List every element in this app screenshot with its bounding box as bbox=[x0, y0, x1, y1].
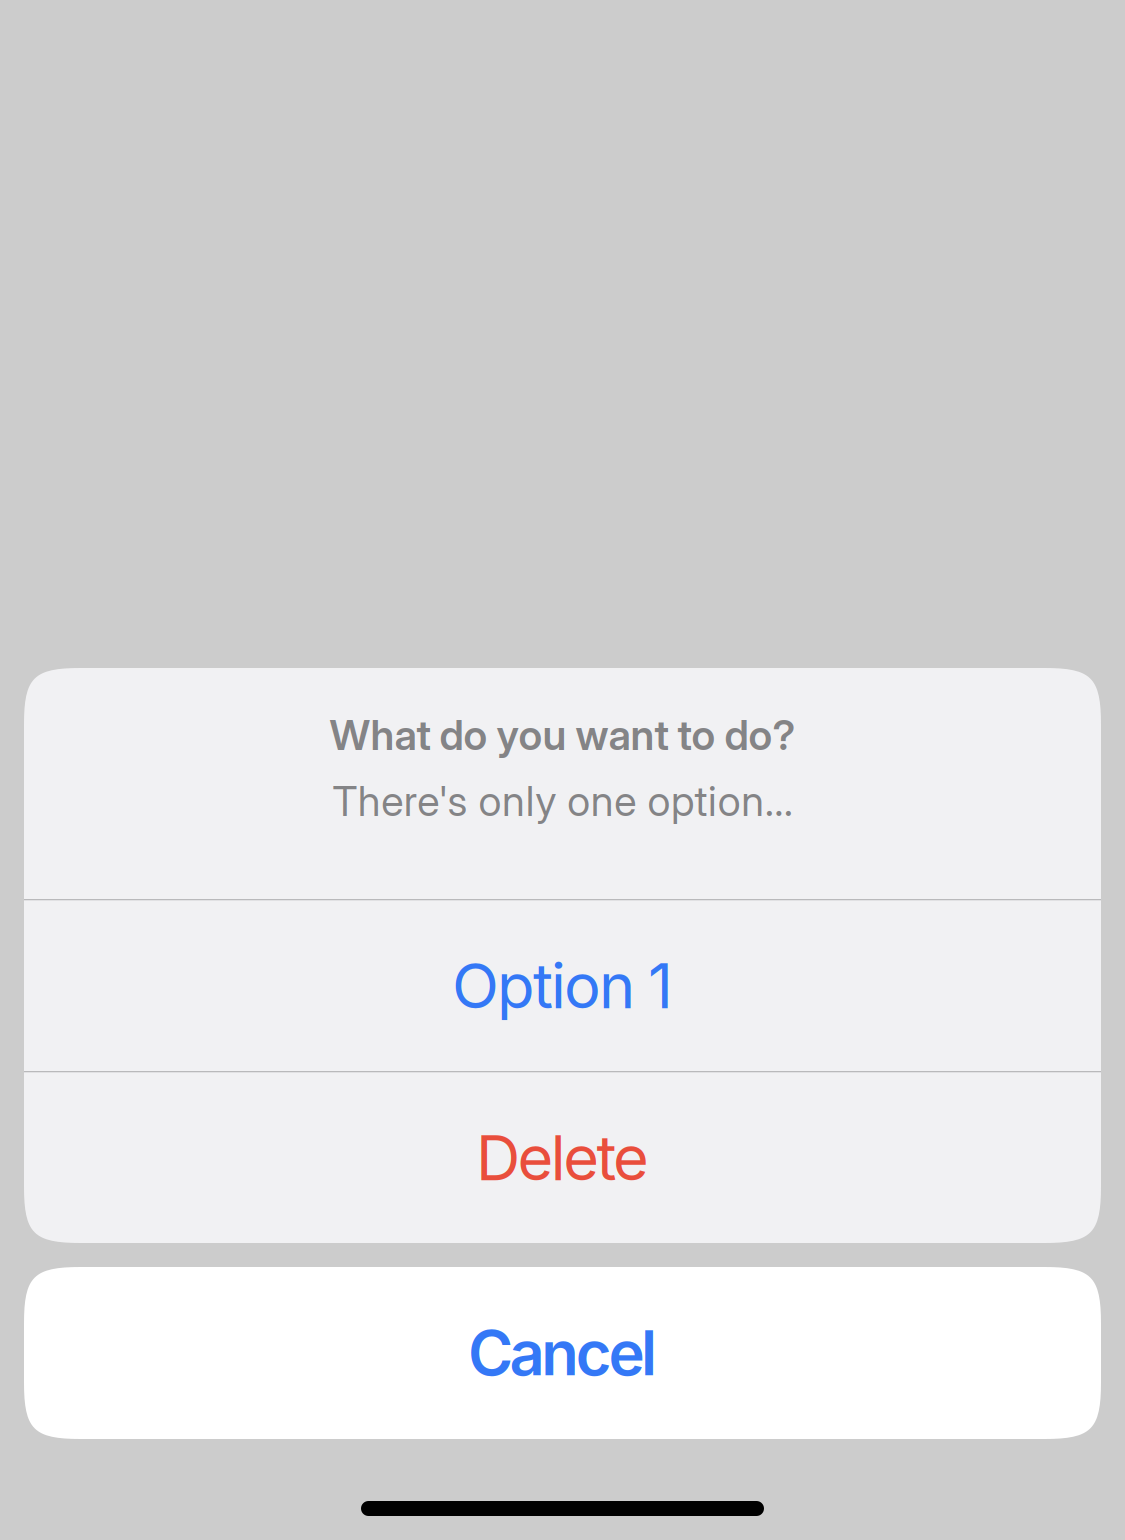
button[interactable]: Option 1 bbox=[24, 901, 1101, 1071]
staticText: Cancel bbox=[468, 1316, 657, 1390]
staticText: Option 1 bbox=[452, 949, 673, 1023]
staticText: What do you want to do? bbox=[329, 710, 795, 760]
button[interactable]: Cancel bbox=[24, 1267, 1101, 1439]
staticText: Delete bbox=[476, 1121, 649, 1195]
button[interactable]: Delete bbox=[24, 1073, 1101, 1243]
staticText: There's only one option... bbox=[332, 776, 793, 826]
